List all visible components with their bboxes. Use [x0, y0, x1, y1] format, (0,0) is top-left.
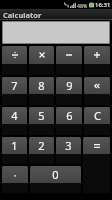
staticText: 1 — [11, 138, 18, 153]
staticText: 0 — [52, 167, 59, 182]
button[interactable]: 1 — [2, 137, 27, 164]
staticText: Calculator — [3, 10, 42, 20]
staticText: 48% — [77, 2, 88, 9]
button[interactable]: Add — [84, 46, 110, 75]
button[interactable]: 6 — [56, 107, 82, 135]
button[interactable]: Subtract — [56, 46, 82, 75]
button[interactable]: 9 — [56, 77, 82, 105]
staticText: 3 — [65, 138, 72, 153]
staticText: 4 — [11, 108, 18, 123]
button[interactable]: 2 — [29, 137, 54, 164]
button[interactable]: Equals — [83, 137, 110, 193]
button[interactable]: 3 — [56, 137, 81, 164]
staticText: 16:31 — [95, 1, 111, 9]
button[interactable]: 5 — [29, 107, 54, 135]
staticText: 9 — [66, 78, 73, 93]
button[interactable]: C — [84, 107, 110, 135]
button[interactable]: 8 — [29, 77, 54, 105]
button[interactable]: 4 — [2, 107, 27, 135]
button[interactable]: 0 — [30, 166, 81, 193]
staticText: 8 — [38, 78, 45, 93]
button[interactable]: Divide — [2, 46, 27, 75]
staticText: 5 — [38, 108, 45, 123]
button[interactable]: 7 — [2, 77, 27, 105]
button[interactable]: Backspace — [84, 77, 110, 105]
staticText: C — [94, 108, 101, 123]
staticText: 6 — [66, 108, 73, 123]
staticText: 2 — [38, 138, 45, 153]
button[interactable]: Decimal point — [2, 166, 28, 193]
button[interactable]: Multiply — [29, 46, 54, 75]
staticText: 7 — [11, 78, 18, 93]
